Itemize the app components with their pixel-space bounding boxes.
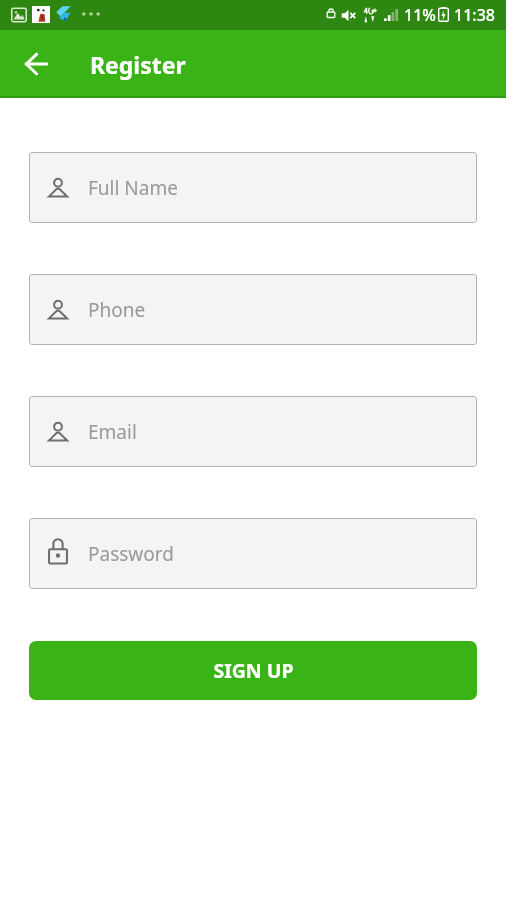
button[interactable]: Password (29, 518, 477, 589)
staticText: Phone (88, 297, 146, 323)
button[interactable]: Phone (29, 274, 477, 345)
staticText: 11% (404, 4, 436, 26)
staticText: Email (88, 419, 137, 445)
staticText: Full Name (88, 175, 178, 201)
button[interactable]: Full Name (29, 152, 477, 223)
staticText: 11:38 (454, 4, 495, 26)
staticText: SIGN UP (213, 657, 294, 684)
button[interactable]: Back (14, 42, 58, 86)
staticText: Register (90, 49, 186, 80)
button[interactable]: Email (29, 396, 477, 467)
staticText: Password (88, 541, 174, 567)
button[interactable]: SIGN UP (29, 641, 477, 700)
